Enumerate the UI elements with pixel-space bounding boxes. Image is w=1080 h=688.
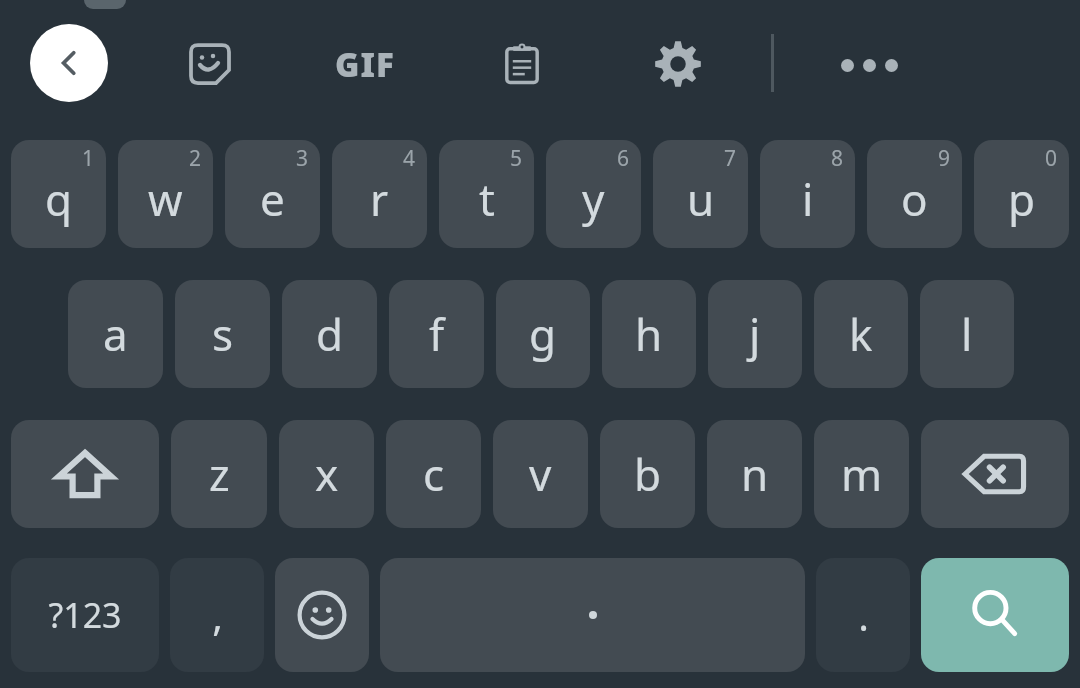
- button[interactable]: .: [816, 558, 910, 672]
- staticText: o: [901, 169, 928, 229]
- button[interactable]: h: [602, 280, 696, 388]
- button[interactable]: a: [68, 280, 163, 388]
- staticText: 9: [938, 144, 951, 173]
- button[interactable]: b: [600, 420, 695, 528]
- staticText: 4: [403, 144, 416, 173]
- button[interactable]: ?123: [11, 558, 159, 672]
- button[interactable]: y: [546, 140, 641, 248]
- button[interactable]: Space: [380, 558, 805, 672]
- staticText: j: [749, 304, 761, 364]
- button[interactable]: Stickers: [172, 26, 248, 102]
- staticText: y: [582, 169, 605, 229]
- staticText: l: [961, 304, 973, 364]
- button[interactable]: g: [496, 280, 590, 388]
- staticText: u: [687, 169, 715, 229]
- button[interactable]: v: [493, 420, 588, 528]
- staticText: k: [849, 304, 873, 364]
- button[interactable]: t: [439, 140, 534, 248]
- staticText: s: [212, 304, 234, 364]
- staticText: 0: [1045, 144, 1058, 173]
- staticText: b: [634, 444, 662, 504]
- staticText: 3: [296, 144, 309, 173]
- button[interactable]: s: [175, 280, 270, 388]
- staticText: z: [209, 444, 230, 504]
- button[interactable]: w: [118, 140, 213, 248]
- staticText: v: [529, 444, 552, 504]
- button[interactable]: Back: [30, 24, 108, 102]
- button[interactable]: Shift: [11, 420, 159, 528]
- staticText: t: [479, 169, 495, 229]
- button[interactable]: More options: [830, 26, 908, 104]
- staticText: ,: [212, 588, 223, 642]
- staticText: q: [45, 169, 73, 229]
- button[interactable]: Settings: [640, 26, 716, 102]
- button[interactable]: z: [171, 420, 267, 528]
- button[interactable]: j: [708, 280, 802, 388]
- staticText: m: [841, 444, 883, 504]
- staticText: p: [1008, 169, 1036, 229]
- staticText: 2: [189, 144, 202, 173]
- staticText: ?123: [48, 592, 122, 638]
- staticText: GIF: [335, 42, 395, 87]
- button[interactable]: Backspace: [921, 420, 1069, 528]
- button[interactable]: n: [707, 420, 802, 528]
- button[interactable]: GIF: [322, 26, 408, 102]
- button[interactable]: q: [11, 140, 106, 248]
- staticText: x: [315, 444, 339, 504]
- staticText: 7: [724, 144, 737, 173]
- staticText: r: [370, 169, 389, 229]
- staticText: 6: [617, 144, 630, 173]
- button[interactable]: x: [279, 420, 374, 528]
- staticText: 1: [82, 144, 95, 173]
- button[interactable]: u: [653, 140, 748, 248]
- staticText: a: [103, 304, 128, 364]
- staticText: w: [148, 169, 183, 229]
- staticText: f: [429, 304, 445, 364]
- staticText: i: [802, 169, 814, 229]
- button[interactable]: Emoji: [275, 558, 369, 672]
- button[interactable]: p: [974, 140, 1069, 248]
- staticText: e: [260, 169, 285, 229]
- staticText: 5: [510, 144, 523, 173]
- staticText: c: [423, 444, 445, 504]
- button[interactable]: i: [760, 140, 855, 248]
- button[interactable]: Clipboard: [484, 26, 560, 102]
- button[interactable]: o: [867, 140, 962, 248]
- staticText: 8: [831, 144, 844, 173]
- button[interactable]: l: [920, 280, 1014, 388]
- button[interactable]: e: [225, 140, 320, 248]
- staticText: h: [635, 304, 663, 364]
- staticText: g: [529, 304, 557, 364]
- staticText: n: [741, 444, 769, 504]
- button[interactable]: r: [332, 140, 427, 248]
- button[interactable]: c: [386, 420, 481, 528]
- button[interactable]: k: [814, 280, 908, 388]
- button[interactable]: f: [389, 280, 484, 388]
- button[interactable]: Search: [921, 558, 1069, 672]
- button[interactable]: d: [282, 280, 377, 388]
- button[interactable]: ,: [170, 558, 264, 672]
- staticText: d: [316, 304, 344, 364]
- staticText: .: [858, 588, 869, 642]
- button[interactable]: m: [814, 420, 909, 528]
